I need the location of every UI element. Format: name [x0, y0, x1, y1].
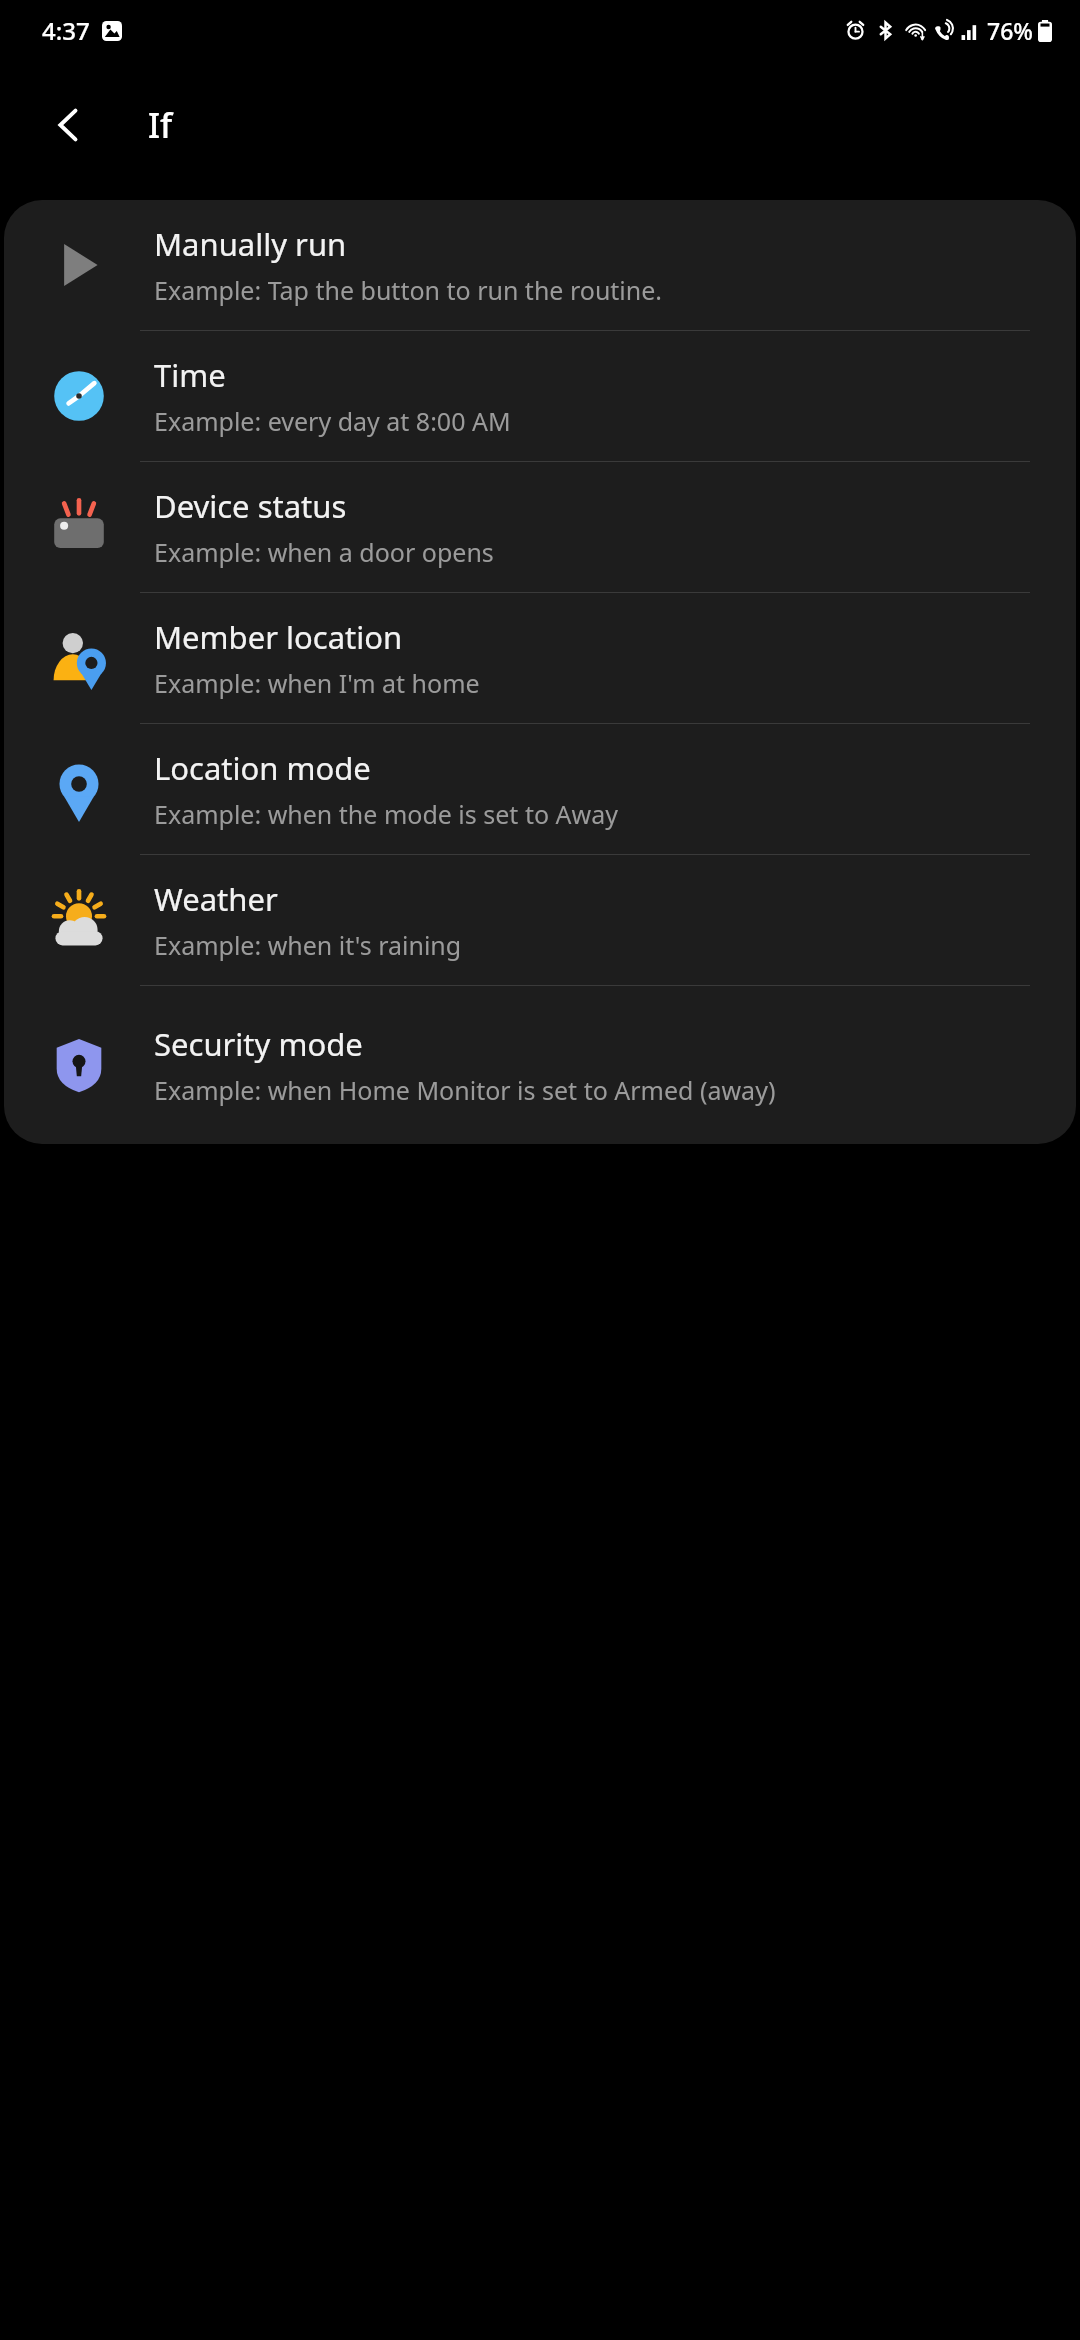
button[interactable]: Device status	[4, 462, 1076, 593]
button[interactable]: Security mode	[4, 986, 1076, 1144]
staticText: 4:37	[42, 14, 90, 47]
staticText: Security mode	[154, 1023, 363, 1065]
button[interactable]: Time	[4, 331, 1076, 462]
staticText: If	[148, 102, 173, 148]
staticText: Example: when it's raining	[154, 928, 462, 962]
staticText: Example: when Home Monitor is set to Arm…	[154, 1073, 776, 1107]
staticText: Time	[154, 354, 226, 396]
staticText: Example: when a door opens	[154, 535, 494, 569]
staticText: Example: Tap the button to run the routi…	[154, 273, 663, 307]
staticText: Manually run	[154, 223, 347, 265]
staticText: Device status	[154, 485, 347, 527]
staticText: Example: when I'm at home	[154, 666, 480, 700]
button[interactable]: Weather	[4, 855, 1076, 986]
button[interactable]: Member location	[4, 593, 1076, 724]
staticText: Location mode	[154, 747, 371, 789]
button[interactable]: Manually run	[4, 200, 1076, 331]
staticText: Example: when the mode is set to Away	[154, 797, 618, 831]
staticText: Member location	[154, 616, 403, 658]
button[interactable]: Location mode	[4, 724, 1076, 855]
staticText: Example: every day at 8:00 AM	[154, 404, 511, 438]
staticText: Weather	[154, 878, 278, 920]
staticText: 76%	[987, 15, 1033, 46]
button[interactable]: Back	[30, 86, 108, 164]
